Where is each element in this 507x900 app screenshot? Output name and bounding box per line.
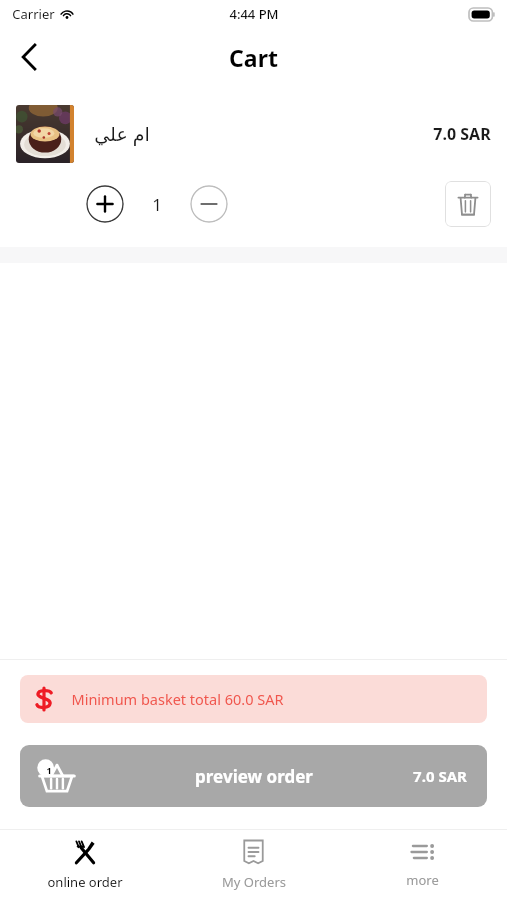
- staticText: 1: [152, 193, 162, 216]
- staticText: 4:44 PM: [229, 5, 279, 23]
- staticText: Carrier: [12, 5, 55, 23]
- staticText: 7.0 SAR: [413, 766, 467, 786]
- button[interactable]: Back: [6, 34, 52, 80]
- button[interactable]: Minimum basket total 60.0 SAR: [20, 675, 487, 723]
- staticText: ام علي: [94, 121, 150, 147]
- staticText: 7.0 SAR: [433, 123, 491, 145]
- button[interactable]: more: [338, 830, 507, 900]
- staticText: Minimum basket total 60.0 SAR: [71, 689, 284, 709]
- button[interactable]: My Orders: [169, 830, 338, 900]
- button[interactable]: Decrease quantity: [190, 185, 228, 223]
- staticText: My Orders: [222, 873, 286, 891]
- button[interactable]: Increase quantity: [86, 185, 124, 223]
- staticText: Cart: [229, 42, 278, 73]
- button[interactable]: Delete item: [445, 181, 491, 227]
- staticText: more: [406, 871, 439, 889]
- staticText: preview order: [195, 765, 313, 788]
- button[interactable]: ام علي: [0, 86, 507, 247]
- button[interactable]: 1: [20, 745, 487, 807]
- button[interactable]: online order: [0, 830, 169, 900]
- staticText: online order: [47, 873, 123, 891]
- staticText: 1: [46, 764, 52, 776]
